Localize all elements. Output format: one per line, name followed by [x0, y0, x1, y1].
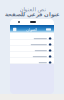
- button[interactable]: Back: [46, 28, 51, 31]
- staticText: عنوان فرعي للصفحة: [4, 11, 59, 18]
- button[interactable]: [10, 58, 54, 64]
- staticText: نص العنوان: [19, 6, 45, 13]
- button[interactable]: [10, 40, 54, 46]
- button[interactable]: [10, 46, 54, 52]
- button[interactable]: [10, 52, 54, 58]
- staticText: العنوان: [26, 27, 37, 32]
- button[interactable]: [10, 34, 54, 40]
